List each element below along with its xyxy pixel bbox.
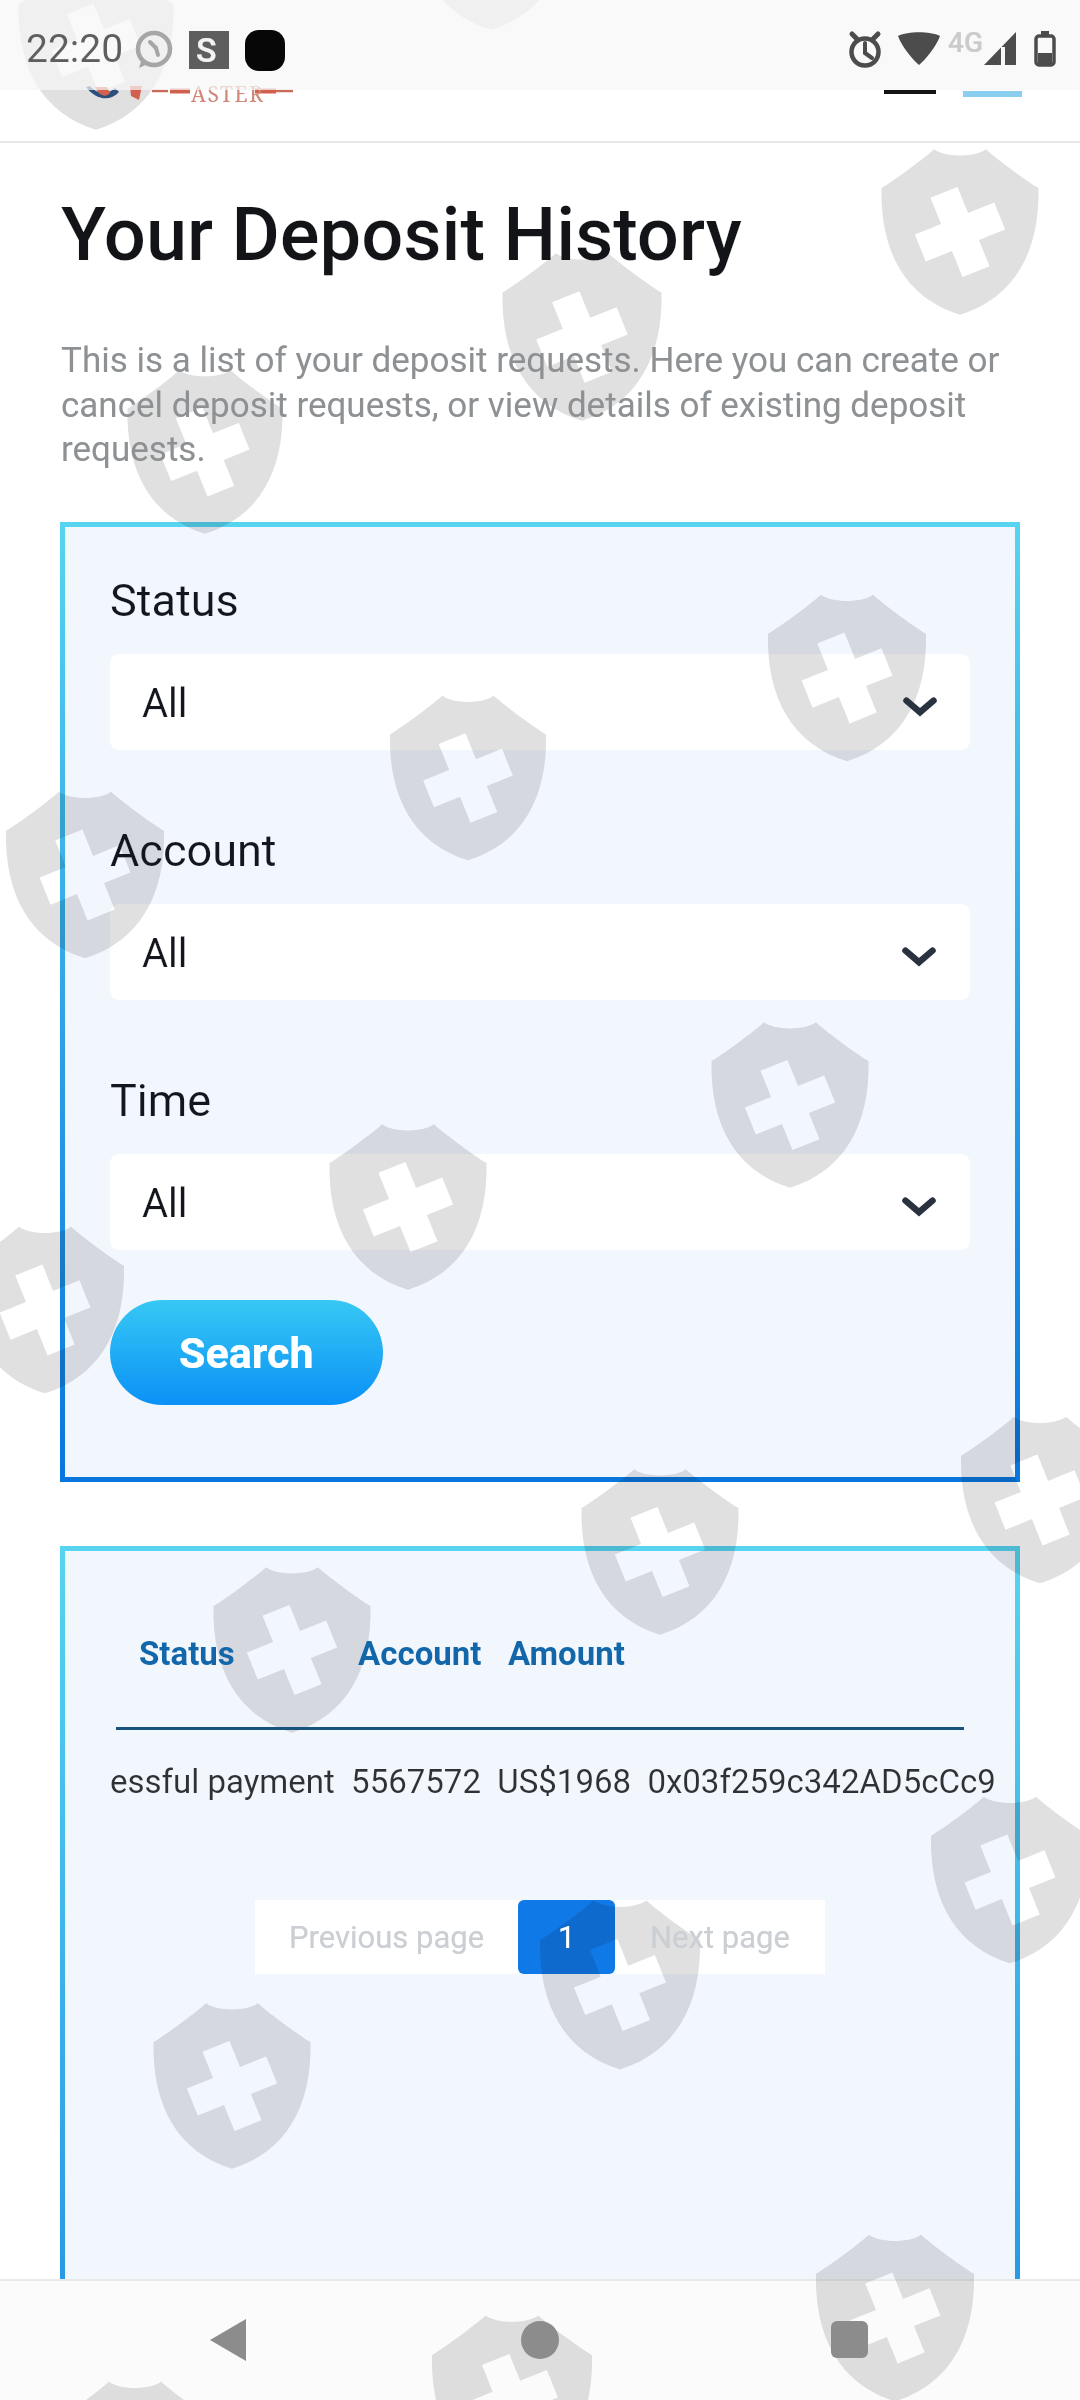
staticText: All bbox=[142, 680, 188, 727]
staticText: S bbox=[196, 30, 217, 70]
staticText: All bbox=[142, 1180, 188, 1227]
button[interactable] bbox=[110, 1154, 970, 1250]
staticText: Search bbox=[179, 1328, 314, 1378]
button[interactable]: Back bbox=[168, 2279, 288, 2400]
staticText: Your Deposit History bbox=[61, 191, 742, 278]
staticText: essful payment 5567572 US$1968 0x03f259c… bbox=[110, 1762, 1022, 1801]
staticText: 1 bbox=[558, 1919, 576, 1955]
button[interactable]: Recent apps bbox=[789, 2279, 909, 2400]
staticText: Account bbox=[358, 1634, 482, 1673]
staticText: Amount bbox=[508, 1634, 625, 1673]
staticText: Next page bbox=[650, 1919, 790, 1955]
staticText: 22:20 bbox=[26, 26, 124, 72]
button[interactable] bbox=[110, 654, 970, 750]
staticText: Status bbox=[110, 574, 239, 627]
staticText: Status bbox=[139, 1634, 235, 1673]
staticText: 4G bbox=[948, 26, 983, 59]
button[interactable]: Home bbox=[480, 2279, 600, 2400]
staticText: Previous page bbox=[289, 1919, 485, 1955]
staticText: All bbox=[142, 930, 188, 977]
staticText: This is a list of your deposit requests.… bbox=[61, 340, 1036, 469]
staticText: ASTER bbox=[191, 80, 265, 109]
staticText: Time bbox=[110, 1074, 212, 1127]
button[interactable] bbox=[110, 904, 970, 1000]
button[interactable]: 1 bbox=[518, 1900, 615, 1974]
button[interactable]: Next page bbox=[615, 1900, 825, 1974]
button[interactable]: Search bbox=[110, 1300, 383, 1405]
staticText: Account bbox=[110, 824, 277, 877]
button[interactable]: Previous page bbox=[255, 1900, 518, 1974]
